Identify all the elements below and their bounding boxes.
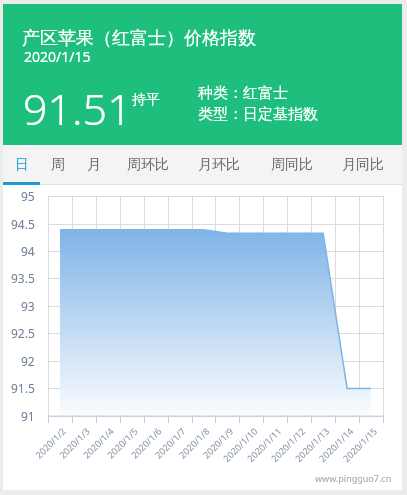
staticText: 2020/1/15 bbox=[24, 47, 91, 66]
button[interactable]: 月 bbox=[69, 145, 119, 185]
button[interactable]: 周 bbox=[40, 145, 76, 185]
staticText: 月环比 bbox=[198, 156, 240, 174]
button[interactable]: 月同比 bbox=[333, 145, 393, 185]
staticText: 持平 bbox=[132, 91, 160, 109]
button[interactable]: 周环比 bbox=[114, 145, 182, 185]
staticText: 周环比 bbox=[127, 156, 169, 174]
button[interactable]: 月环比 bbox=[184, 145, 254, 185]
staticText: 91.51 bbox=[23, 79, 132, 138]
staticText: 周同比 bbox=[271, 156, 313, 174]
button[interactable]: 周同比 bbox=[257, 145, 327, 185]
staticText: 周 bbox=[51, 156, 65, 174]
staticText: 月 bbox=[87, 156, 101, 174]
staticText: 产区苹果（红富士）价格指数 bbox=[22, 27, 256, 50]
staticText: 类型：日定基指数 bbox=[198, 105, 318, 124]
staticText: 月同比 bbox=[342, 156, 384, 174]
button[interactable]: 日 bbox=[4, 145, 40, 185]
staticText: 日 bbox=[15, 156, 29, 174]
staticText: 种类：红富士 bbox=[198, 84, 288, 103]
